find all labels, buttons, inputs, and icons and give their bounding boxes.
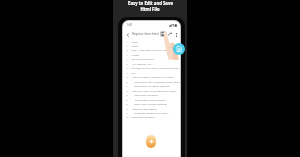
staticText: <div class="container"> xyxy=(131,58,155,61)
staticText: 8 xyxy=(124,72,128,75)
staticText: </head> xyxy=(131,54,140,57)
staticText: Html File xyxy=(140,6,160,12)
staticText: <input type="text" placeholder="Enter Em… xyxy=(134,81,180,84)
staticText: <p>Please fill in this form to create an… xyxy=(131,67,180,70)
staticText: 4 xyxy=(124,54,128,57)
button[interactable]: Back xyxy=(124,31,131,38)
staticText: 14 xyxy=(124,99,128,102)
staticText: name="psw" id="psw" required> xyxy=(134,103,168,106)
staticText: <h1> Register </h1> xyxy=(132,63,153,66)
staticText: 2 xyxy=(124,45,128,48)
staticText: 12 xyxy=(124,90,128,93)
button[interactable]: Add xyxy=(146,135,156,148)
button[interactable]: More options xyxy=(174,32,179,37)
staticText: Easy to Edit and Save xyxy=(128,0,173,6)
staticText: 1 xyxy=(124,41,128,44)
staticText: 9 xyxy=(124,76,128,79)
staticText: <html> xyxy=(131,41,139,44)
staticText: <hr> xyxy=(131,72,136,75)
staticText: 16 xyxy=(124,108,128,111)
staticText: <input type="password" xyxy=(131,116,156,119)
staticText: placeholder="Enter Password" xyxy=(135,99,167,102)
button[interactable]: Save file xyxy=(173,43,185,55)
staticText: 7 xyxy=(124,67,128,70)
staticText: <head> xyxy=(131,45,139,48)
staticText: 5 xyxy=(124,58,128,61)
staticText: name="email" id="email" required> xyxy=(134,85,171,88)
staticText: 15 xyxy=(124,103,128,106)
staticText: 11 xyxy=(124,85,128,88)
staticText: 18 xyxy=(124,116,128,119)
staticText: <label for="psw"><b>Password</b></label> xyxy=(132,90,177,93)
staticText: <b>Repeat Password</b></label> xyxy=(134,112,169,115)
button[interactable]: Save xyxy=(160,31,166,37)
staticText: <title> Login Page Test Form </title> xyxy=(131,49,170,52)
staticText: Register form.html xyxy=(132,32,159,36)
staticText: 3 xyxy=(124,49,128,52)
staticText: 6 xyxy=(124,63,128,66)
staticText: 17 xyxy=(124,112,128,115)
staticText: <input type="password" xyxy=(134,94,159,97)
button[interactable]: Undo xyxy=(167,31,173,37)
staticText: <label for="psw-repeat"> xyxy=(132,108,158,111)
staticText: 10 xyxy=(124,81,128,84)
staticText: 13 xyxy=(124,94,128,97)
staticText: <label for="email"><b>Email</b></label> xyxy=(132,76,174,79)
staticText: 9:41 xyxy=(127,23,133,27)
